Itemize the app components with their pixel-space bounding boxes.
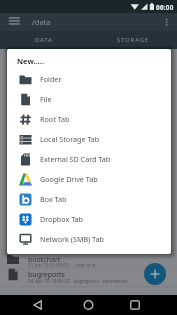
button[interactable]: DATA <box>0 31 88 49</box>
staticText: bugreports <box>28 270 65 280</box>
staticText: External SD Card Tab <box>40 154 111 164</box>
staticText: Network (SMB) Tab <box>40 234 104 244</box>
staticText: 01 Jan 70 01:00:00 · rwxr-xr-x <box>28 262 96 269</box>
button[interactable] <box>0 295 59 315</box>
staticText: Local Storage Tab <box>40 134 100 144</box>
staticText: Google Drive Tab <box>40 174 98 184</box>
button[interactable] <box>118 295 177 315</box>
button[interactable]: External SD Card Tab <box>7 149 171 169</box>
staticText: Box Tab <box>40 194 67 204</box>
button[interactable]: Local Storage Tab <box>7 129 171 149</box>
staticText: /data <box>32 17 51 27</box>
staticText: Folder <box>40 74 62 84</box>
button[interactable] <box>144 263 166 285</box>
button[interactable]: Network (SMB) Tab <box>7 229 171 249</box>
button[interactable]: Google Drive Tab <box>7 169 171 189</box>
staticText: DATA <box>35 36 53 44</box>
staticText: bootchart <box>28 255 61 265</box>
button[interactable] <box>0 13 26 31</box>
button[interactable]: Folder <box>7 69 171 89</box>
staticText: Root Tab <box>40 114 70 124</box>
button[interactable]: Root Tab <box>7 109 171 129</box>
button[interactable]: Dropbox Tab <box>7 209 171 229</box>
staticText: 04 Apr 70 18:50:00 · bugreports · rwxrwx… <box>28 278 128 285</box>
staticText: STORAGE <box>117 36 149 44</box>
button[interactable] <box>59 295 118 315</box>
button[interactable]: Box Tab <box>7 189 171 209</box>
button[interactable]: STORAGE <box>88 31 177 49</box>
button[interactable]: File <box>7 89 171 109</box>
staticText: 06:00 <box>156 3 174 12</box>
staticText: Dropbox Tab <box>40 214 84 224</box>
staticText: File <box>40 94 52 104</box>
staticText: New..... <box>17 56 45 66</box>
